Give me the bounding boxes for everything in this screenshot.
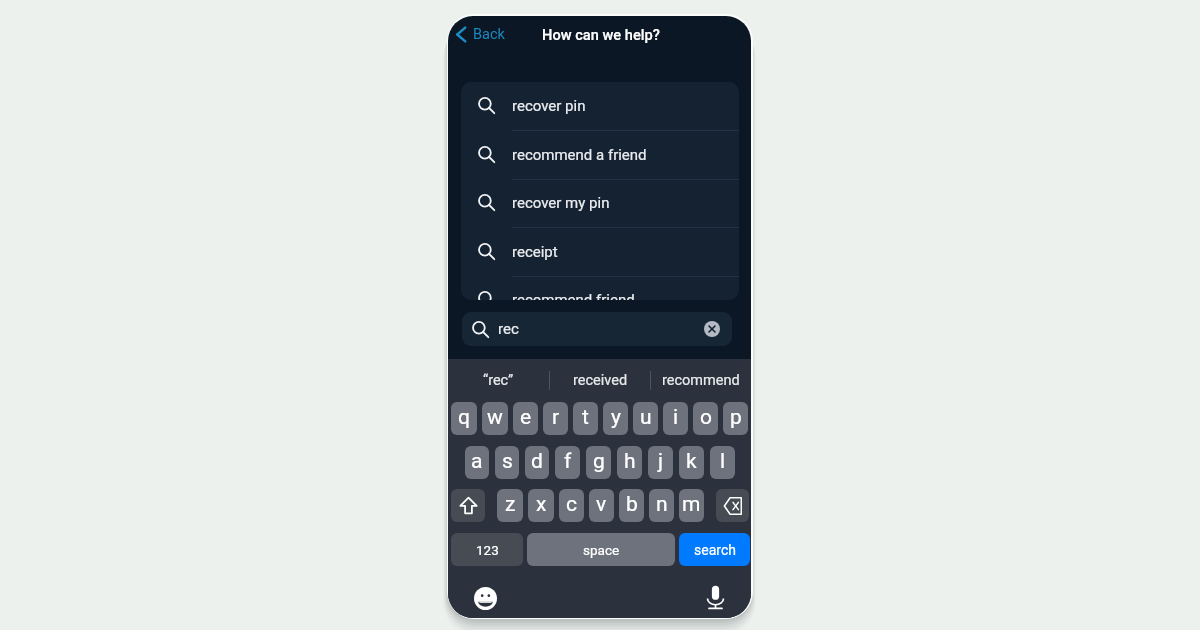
button[interactable]: recover pin xyxy=(461,82,739,131)
button[interactable]: recommend friend xyxy=(461,276,739,300)
staticText: i xyxy=(673,405,679,430)
button[interactable]: g xyxy=(586,446,611,479)
staticText: z xyxy=(505,492,516,517)
staticText: How can we help? xyxy=(542,26,660,43)
button[interactable]: u xyxy=(633,402,658,435)
staticText: c xyxy=(566,492,577,517)
staticText: e xyxy=(520,405,532,430)
button[interactable]: f xyxy=(555,446,580,479)
staticText: receipt xyxy=(512,243,558,261)
button[interactable]: receipt xyxy=(461,228,739,277)
staticText: a xyxy=(471,449,483,474)
staticText: “rec” xyxy=(483,372,514,389)
staticText: b xyxy=(626,492,638,517)
button[interactable]: rec xyxy=(462,312,732,346)
staticText: u xyxy=(640,405,652,430)
staticText: recommend a friend xyxy=(512,146,647,164)
button[interactable]: t xyxy=(573,402,598,435)
button[interactable]: Back xyxy=(451,22,507,47)
button[interactable]: recommend xyxy=(651,359,751,402)
button[interactable]: Clear xyxy=(704,321,720,337)
button[interactable]: Backspace xyxy=(716,489,749,522)
staticText: g xyxy=(593,449,605,474)
staticText: recover my pin xyxy=(512,194,610,212)
button[interactable]: x xyxy=(528,489,554,522)
button[interactable]: recover my pin xyxy=(461,179,739,228)
staticText: x xyxy=(536,492,547,517)
button[interactable]: q xyxy=(451,402,477,435)
button[interactable]: c xyxy=(559,489,584,522)
button[interactable]: h xyxy=(617,446,642,479)
button[interactable]: Emoji xyxy=(471,584,499,612)
button[interactable]: p xyxy=(723,402,748,435)
staticText: n xyxy=(656,492,668,517)
staticText: k xyxy=(686,449,697,474)
staticText: p xyxy=(730,405,742,430)
button[interactable]: Voice input xyxy=(701,584,729,612)
button[interactable]: y xyxy=(603,402,628,435)
staticText: received xyxy=(573,372,628,389)
staticText: recover pin xyxy=(512,97,586,115)
staticText: l xyxy=(720,449,726,474)
staticText: Back xyxy=(473,26,505,43)
button[interactable]: 123 xyxy=(451,533,523,566)
button[interactable]: received xyxy=(550,359,650,402)
button[interactable]: r xyxy=(543,402,568,435)
staticText: o xyxy=(700,405,712,430)
button[interactable]: b xyxy=(619,489,644,522)
staticText: q xyxy=(458,405,470,430)
staticText: 123 xyxy=(476,542,499,558)
staticText: m xyxy=(682,492,701,517)
button[interactable]: d xyxy=(525,446,549,479)
staticText: space xyxy=(583,542,620,558)
staticText: f xyxy=(564,449,572,474)
staticText: d xyxy=(531,449,543,474)
button[interactable]: s xyxy=(495,446,519,479)
button[interactable]: a xyxy=(465,446,489,479)
button[interactable]: z xyxy=(497,489,523,522)
button[interactable]: n xyxy=(649,489,674,522)
staticText: j xyxy=(658,449,664,474)
staticText: h xyxy=(624,449,636,474)
button[interactable]: i xyxy=(663,402,688,435)
button[interactable]: o xyxy=(693,402,718,435)
staticText: w xyxy=(487,405,503,430)
button[interactable]: space xyxy=(527,533,675,566)
button[interactable]: m xyxy=(679,489,704,522)
staticText: v xyxy=(596,492,607,517)
staticText: rec xyxy=(498,320,519,338)
staticText: y xyxy=(611,405,621,430)
staticText: r xyxy=(552,405,560,430)
button[interactable]: Shift xyxy=(451,489,485,522)
button[interactable]: “rec” xyxy=(448,359,549,402)
button[interactable]: k xyxy=(679,446,704,479)
button[interactable]: j xyxy=(648,446,673,479)
button[interactable]: v xyxy=(589,489,614,522)
staticText: t xyxy=(582,405,589,430)
staticText: search xyxy=(694,542,736,558)
staticText: recommend friend xyxy=(512,291,635,300)
button[interactable]: w xyxy=(482,402,508,435)
button[interactable]: e xyxy=(513,402,538,435)
button[interactable]: recommend a friend xyxy=(461,131,739,180)
staticText: s xyxy=(502,449,513,474)
button[interactable]: search xyxy=(679,533,750,566)
button[interactable]: l xyxy=(710,446,735,479)
staticText: recommend xyxy=(662,372,740,389)
